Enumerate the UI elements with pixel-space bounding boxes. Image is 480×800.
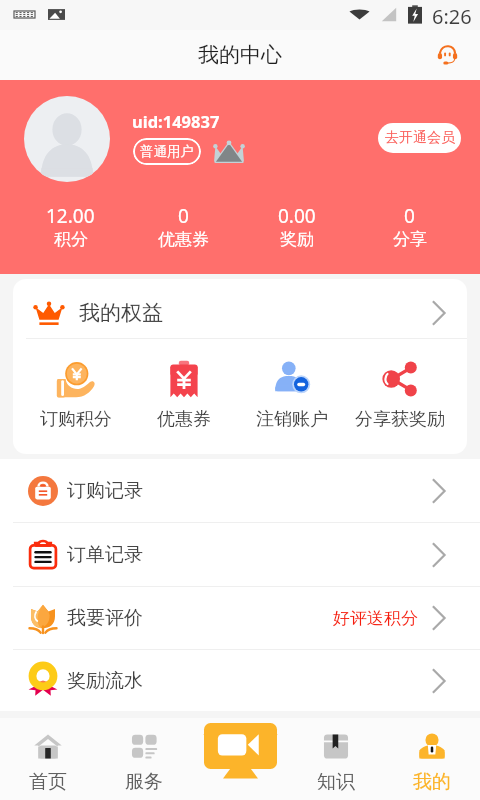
staticText: 我要评价: [67, 606, 143, 630]
button[interactable]: 注销账户: [238, 360, 346, 431]
staticText: 12.00: [46, 203, 95, 229]
staticText: 0: [404, 203, 415, 229]
staticText: 分享: [393, 229, 427, 250]
staticText: 奖励: [280, 229, 314, 250]
button[interactable]: 0.00: [240, 203, 353, 250]
staticText: 我的权益: [79, 300, 163, 326]
button[interactable]: 去开通会员: [378, 123, 461, 153]
button[interactable]: 分享获奖励: [346, 360, 454, 431]
button[interactable]: 0: [353, 203, 466, 250]
button[interactable]: 普通用户: [133, 138, 201, 165]
staticText: 注销账户: [256, 408, 328, 431]
staticText: 0: [178, 203, 189, 229]
button[interactable]: 我要评价: [0, 587, 480, 649]
staticText: 订单记录: [67, 543, 143, 567]
button[interactable]: 奖励流水: [0, 650, 480, 711]
staticText: 奖励流水: [67, 669, 143, 693]
staticText: 我的中心: [198, 42, 282, 68]
button[interactable]: 订购记录: [0, 459, 480, 522]
button[interactable]: Customer service: [430, 38, 464, 72]
staticText: 优惠券: [157, 408, 211, 431]
staticText: 分享获奖励: [355, 408, 445, 431]
button[interactable]: 0: [127, 203, 240, 250]
button[interactable]: 12.00: [14, 203, 127, 250]
staticText: 我的: [413, 770, 451, 794]
button[interactable]: Video: [204, 723, 277, 779]
staticText: 普通用户: [140, 143, 194, 160]
button[interactable]: 首页: [0, 734, 96, 794]
button[interactable]: 我的: [384, 734, 480, 794]
button[interactable]: 优惠券: [130, 360, 238, 431]
button[interactable]: 订购积分: [22, 360, 130, 431]
staticText: 订购记录: [67, 479, 143, 503]
staticText: 0.00: [278, 203, 316, 229]
staticText: 好评送积分: [333, 608, 418, 629]
button[interactable]: Avatar: [24, 96, 110, 182]
button[interactable]: 我的权益: [13, 279, 467, 338]
staticText: 优惠券: [158, 229, 209, 250]
button[interactable]: 订单记录: [0, 523, 480, 586]
staticText: 6:26: [432, 3, 472, 30]
button[interactable]: 知识: [288, 734, 384, 794]
staticText: 服务: [125, 770, 163, 794]
staticText: 订购积分: [40, 408, 112, 431]
staticText: 知识: [317, 770, 355, 794]
staticText: 去开通会员: [385, 129, 455, 147]
staticText: 积分: [54, 229, 88, 250]
staticText: uid:149837: [132, 110, 220, 132]
staticText: 首页: [29, 770, 67, 794]
button[interactable]: 服务: [96, 734, 192, 794]
